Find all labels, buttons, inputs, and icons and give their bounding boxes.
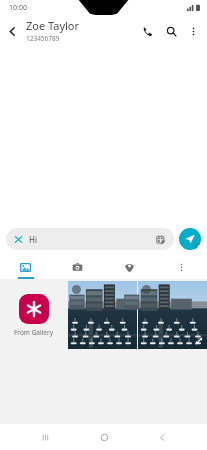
button[interactable]: Camera xyxy=(51,255,103,279)
button[interactable]: Send xyxy=(179,228,201,250)
button[interactable]: From Gallery xyxy=(0,281,68,349)
staticText: 123456789 xyxy=(26,34,60,43)
staticText: Zoe Taylor xyxy=(26,18,80,33)
button[interactable]: Call xyxy=(135,19,159,43)
button[interactable]: Gallery xyxy=(0,255,51,279)
button[interactable]: More xyxy=(155,255,207,279)
staticText: From Gallery xyxy=(14,328,54,337)
staticText: 10:00 xyxy=(9,3,27,13)
button[interactable]: Search xyxy=(159,19,183,43)
staticText: Hi xyxy=(29,234,37,245)
button[interactable]: Recents xyxy=(32,424,58,450)
button[interactable]: Back xyxy=(149,424,175,450)
button[interactable]: Stickers xyxy=(155,234,166,245)
button[interactable]: Back xyxy=(0,19,24,43)
button[interactable]: Hi xyxy=(6,228,174,250)
button[interactable]: Photo xyxy=(68,281,137,349)
staticText: 1 xyxy=(197,244,200,250)
button[interactable]: Select photo xyxy=(142,285,151,294)
button[interactable]: Home xyxy=(91,424,117,450)
button[interactable]: Select photo xyxy=(72,285,81,294)
button[interactable]: Photo xyxy=(138,281,207,349)
button[interactable]: Location xyxy=(103,255,155,279)
button[interactable]: More options xyxy=(183,21,203,41)
